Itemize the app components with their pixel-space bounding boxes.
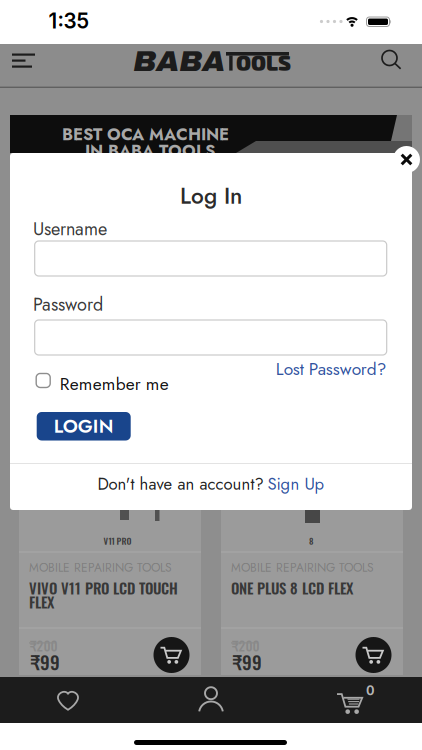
staticText: ₹200 xyxy=(29,635,57,655)
staticText: IN BABA TOOLS xyxy=(85,139,215,163)
staticText: Log In xyxy=(180,179,242,212)
staticText: MOBILE REPAIRING TOOLS xyxy=(29,559,172,576)
staticText: LOGIN xyxy=(54,413,114,440)
button[interactable]: Add to cart xyxy=(153,637,189,673)
staticText: OOLS xyxy=(236,49,291,75)
staticText: BABA xyxy=(133,45,225,78)
button[interactable]: Wishlist xyxy=(46,680,90,720)
staticText: VIVO V11 PRO LCD TOUCH xyxy=(29,577,178,599)
staticText: ₹200 xyxy=(231,635,259,655)
button[interactable]: LOGIN xyxy=(37,412,131,440)
button[interactable]: Cart xyxy=(331,681,379,721)
staticText: Sign Up xyxy=(267,472,324,496)
staticText: MOBILE REPAIRING TOOLS xyxy=(231,559,374,576)
staticText: BEST OCA MACHINE xyxy=(62,122,229,147)
staticText: V11 PRO xyxy=(103,534,131,547)
staticText: Remember me xyxy=(60,371,169,396)
staticText: FLEX xyxy=(29,591,54,613)
staticText: ₹99 xyxy=(232,648,262,676)
button[interactable]: Remember me xyxy=(36,375,176,393)
staticText: 8 xyxy=(309,534,313,547)
staticText: Lost Password? xyxy=(276,356,387,381)
staticText: 0 xyxy=(366,683,375,698)
button[interactable]: Add to cart xyxy=(355,637,391,673)
button[interactable]: Close xyxy=(393,146,420,173)
button[interactable]: Sign Up xyxy=(267,472,324,496)
staticText: ₹99 xyxy=(30,648,60,676)
staticText: ONE PLUS 8 LCD FLEX xyxy=(231,577,353,599)
staticText: Username xyxy=(33,216,107,242)
button[interactable]: Search xyxy=(376,45,412,81)
staticText: Don't have an account? xyxy=(97,472,263,496)
staticText: 1:35 xyxy=(48,8,89,33)
button[interactable]: Lost Password? xyxy=(276,356,387,381)
staticText: Password xyxy=(33,291,103,317)
button[interactable]: Account xyxy=(189,680,233,720)
button[interactable]: Menu xyxy=(8,45,46,81)
